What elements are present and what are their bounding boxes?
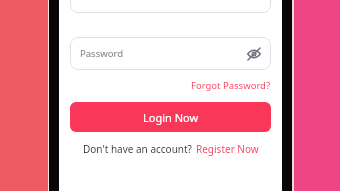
staticText: Login Now — [143, 110, 199, 125]
button[interactable]: Show password — [245, 45, 263, 63]
button[interactable]: Login Now — [70, 102, 271, 132]
staticText: Forgot Password? — [191, 79, 271, 92]
staticText: Register Now — [196, 142, 259, 156]
button[interactable]: Password — [70, 37, 271, 70]
button[interactable]: Forgot Password? — [191, 77, 271, 94]
staticText: Don't have an account? — [83, 142, 192, 156]
staticText: Password — [80, 47, 123, 60]
button[interactable]: Register Now — [196, 142, 259, 156]
button[interactable] — [70, 0, 271, 13]
